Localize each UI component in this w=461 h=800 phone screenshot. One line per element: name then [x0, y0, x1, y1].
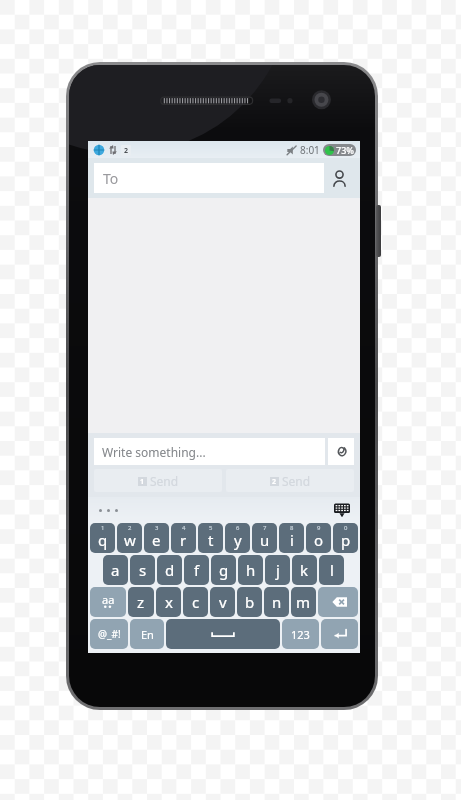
other: Power button [376, 205, 381, 257]
staticText: To [103, 169, 119, 188]
button[interactable]: 3 [144, 523, 169, 553]
staticText: r [180, 530, 187, 550]
staticText: 1 [140, 477, 145, 486]
staticText: k [300, 560, 309, 580]
button[interactable]: 6 [225, 523, 250, 553]
staticText: f [194, 560, 200, 580]
button[interactable]: h [238, 555, 263, 585]
staticText: v [219, 592, 227, 612]
staticText: q [98, 530, 108, 550]
staticText: 8 [290, 524, 294, 532]
button[interactable]: To [94, 163, 324, 193]
staticText: p [341, 530, 351, 550]
button[interactable]: g [211, 555, 236, 585]
button[interactable]: s [130, 555, 155, 585]
button[interactable]: aa [90, 587, 126, 617]
button[interactable]: 2 [226, 469, 354, 492]
staticText: 8:01 [300, 143, 320, 157]
staticText: u [260, 530, 270, 550]
staticText: 0 [344, 524, 348, 532]
staticText: Send [150, 473, 179, 489]
button[interactable]: 5 [198, 523, 223, 553]
button[interactable]: j [265, 555, 290, 585]
button[interactable]: 2 [117, 523, 142, 553]
staticText: i [290, 530, 294, 550]
button[interactable]: 0 [333, 523, 358, 553]
staticText: 1 [101, 524, 105, 532]
staticText: g [219, 560, 229, 580]
button[interactable]: @_#! [90, 619, 128, 649]
staticText: aa [102, 592, 115, 607]
staticText: w [124, 530, 136, 550]
button[interactable]: 9 [306, 523, 331, 553]
button[interactable]: l [319, 555, 344, 585]
staticText: o [314, 530, 324, 550]
staticText: 6 [236, 524, 240, 532]
button[interactable]: x [156, 587, 181, 617]
button[interactable]: z [128, 587, 154, 617]
staticText: 7 [263, 524, 267, 532]
button[interactable]: 1 [90, 523, 115, 553]
staticText: 5 [209, 524, 213, 532]
button[interactable]: Choose contact [324, 163, 354, 193]
button[interactable]: v [210, 587, 235, 617]
button[interactable]: En [130, 619, 164, 649]
button[interactable]: 4 [171, 523, 196, 553]
staticText: t [208, 530, 214, 550]
button[interactable]: c [183, 587, 208, 617]
staticText: l [330, 560, 334, 580]
staticText: 123 [291, 627, 310, 642]
staticText: h [246, 560, 256, 580]
staticText: 4 [182, 524, 186, 532]
staticText: a [111, 560, 120, 580]
button[interactable]: f [184, 555, 209, 585]
staticText: j [276, 560, 280, 580]
button[interactable]: 8 [279, 523, 304, 553]
button[interactable]: Write something... [94, 438, 325, 465]
staticText: En [141, 627, 154, 642]
staticText: @_#! [98, 627, 121, 641]
button[interactable]: 1 [94, 469, 222, 492]
staticText: d [165, 560, 175, 580]
button[interactable]: Hide keyboard [333, 501, 351, 519]
staticText: s [139, 560, 147, 580]
button[interactable]: d [157, 555, 182, 585]
staticText: 2 [128, 524, 132, 532]
staticText: z [137, 592, 145, 612]
staticText: b [245, 592, 255, 612]
button[interactable]: 123 [282, 619, 319, 649]
button[interactable]: b [237, 587, 262, 617]
button[interactable]: More options [99, 509, 118, 512]
staticText: 73% [336, 144, 354, 156]
button[interactable]: Backspace [318, 587, 358, 617]
button[interactable]: m [291, 587, 316, 617]
button[interactable]: 7 [252, 523, 277, 553]
staticText: 2 [124, 146, 129, 156]
staticText: 3 [155, 524, 159, 532]
staticText: c [192, 592, 200, 612]
staticText: Write something... [102, 444, 206, 460]
staticText: n [272, 592, 282, 612]
staticText: e [152, 530, 161, 550]
staticText: y [234, 530, 242, 550]
staticText: m [296, 592, 311, 612]
button[interactable]: Attach file [328, 438, 354, 465]
button[interactable]: Enter [321, 619, 358, 649]
button[interactable]: n [264, 587, 289, 617]
staticText: x [165, 592, 173, 612]
staticText: 9 [317, 524, 321, 532]
button[interactable]: a [103, 555, 128, 585]
button[interactable]: Space [166, 619, 280, 649]
button[interactable]: k [292, 555, 317, 585]
staticText: 2 [272, 477, 277, 486]
staticText: Send [282, 473, 311, 489]
